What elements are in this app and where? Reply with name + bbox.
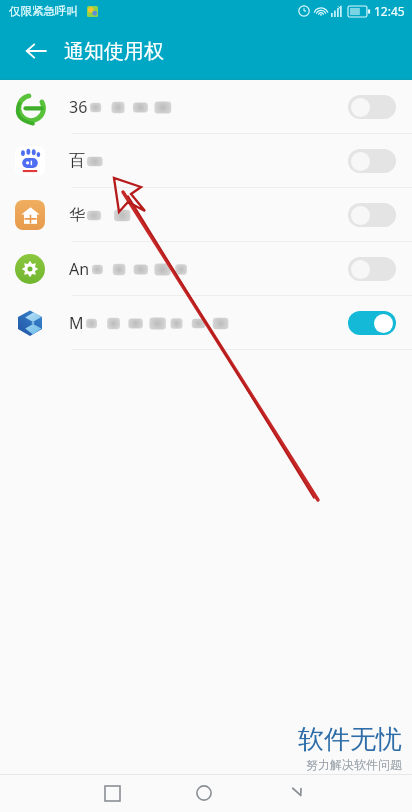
button[interactable]: Back [10, 25, 62, 77]
button[interactable]: 36 [0, 80, 412, 134]
button[interactable]: Off [348, 203, 396, 227]
button[interactable]: Off [348, 257, 396, 281]
staticText: 通知使用权 [64, 39, 164, 64]
button[interactable]: Home [174, 774, 234, 812]
staticText: 12:45 [374, 3, 405, 19]
button[interactable]: On [348, 311, 396, 335]
button[interactable]: 华 [0, 188, 412, 242]
staticText: 36 [69, 96, 88, 118]
staticText: 华 [69, 205, 85, 225]
staticText: An [69, 258, 90, 280]
button[interactable]: Off [348, 149, 396, 173]
button[interactable]: Off [348, 95, 396, 119]
staticText: M [69, 312, 84, 334]
staticText: 软件无忧 [298, 723, 402, 756]
staticText: 仅限紧急呼叫 [9, 4, 78, 18]
button[interactable]: M [0, 296, 412, 350]
button[interactable]: Recent apps [82, 774, 142, 812]
staticText: 百 [69, 151, 85, 171]
button[interactable]: An [0, 242, 412, 296]
button[interactable]: 百 [0, 134, 412, 188]
button[interactable]: Back [266, 774, 326, 812]
staticText: 努力解决软件问题 [306, 757, 402, 772]
